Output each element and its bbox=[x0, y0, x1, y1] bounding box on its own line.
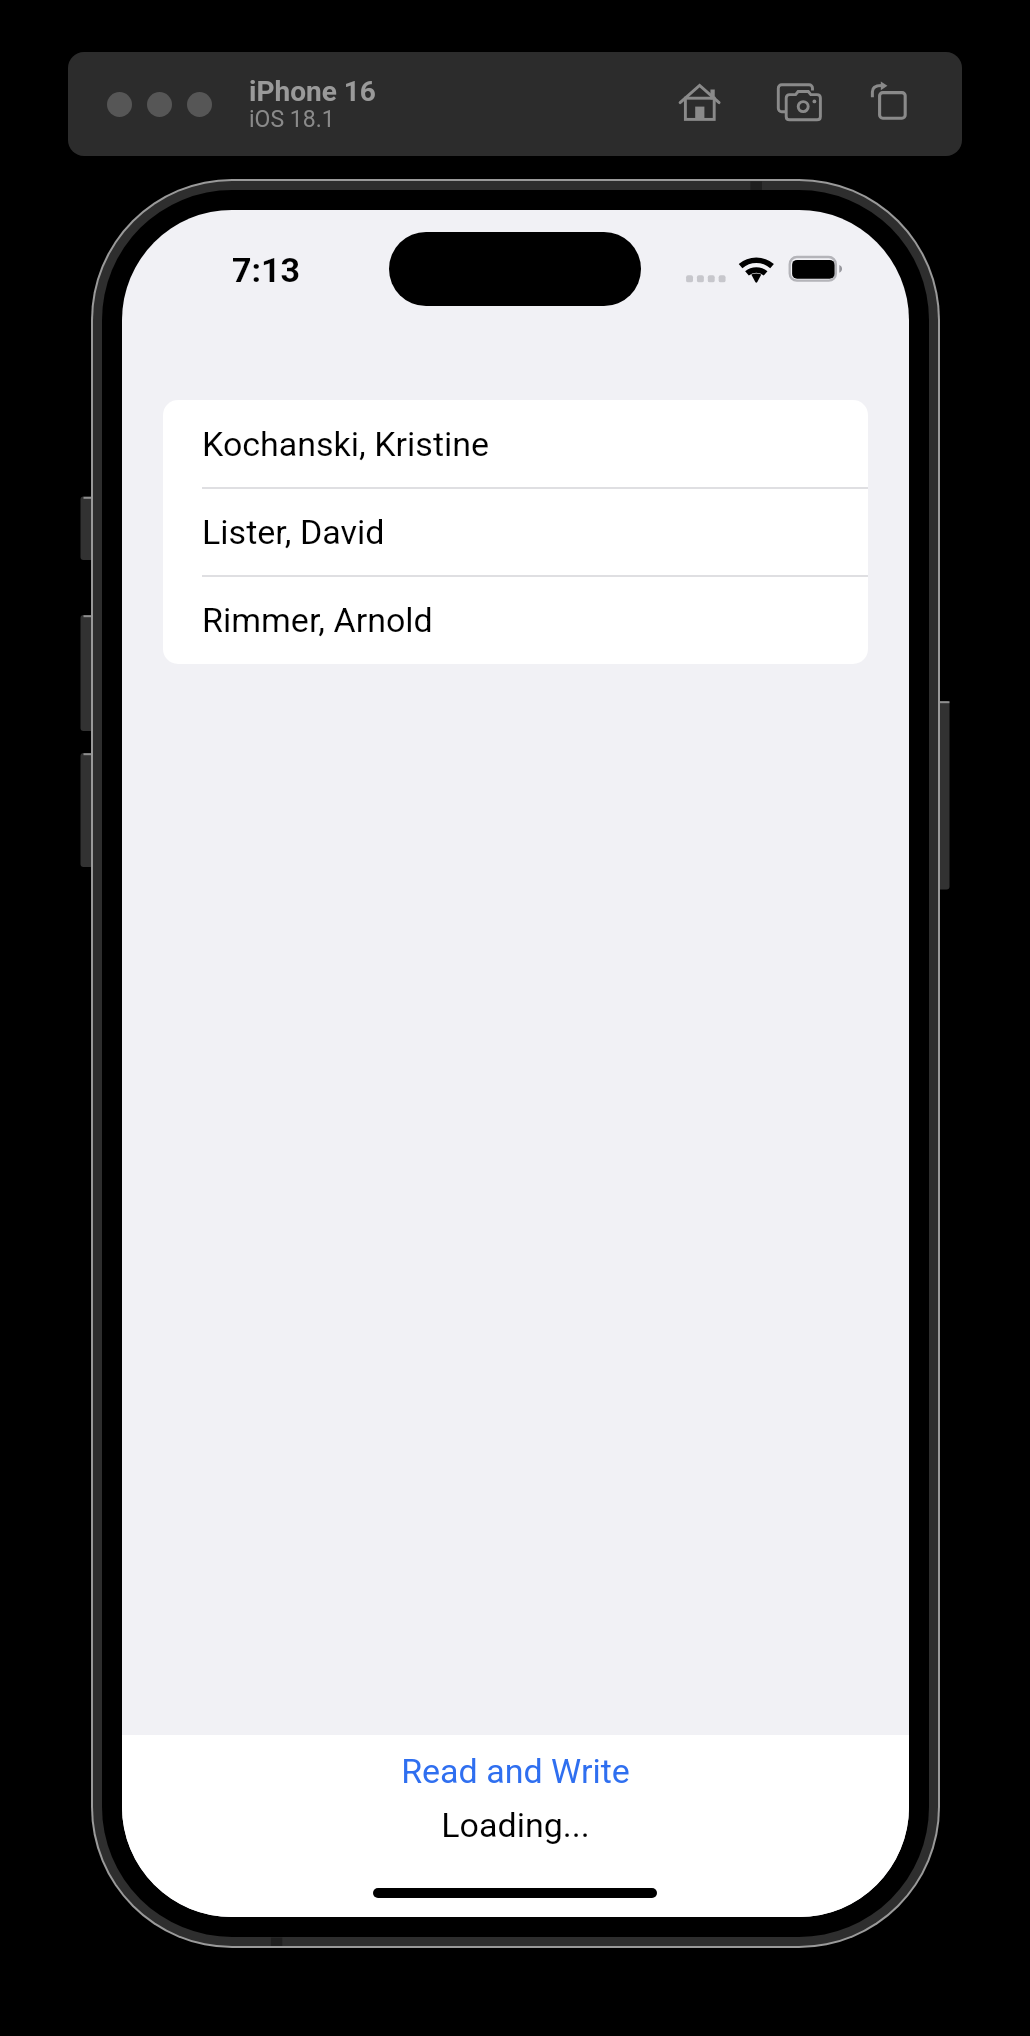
staticText: 7:13 bbox=[232, 250, 301, 290]
button[interactable]: Lister, David bbox=[163, 488, 868, 576]
staticText: iPhone 16 bbox=[249, 75, 376, 108]
staticText: iOS 18.1 bbox=[249, 106, 335, 133]
button[interactable]: Close window bbox=[107, 92, 132, 117]
button[interactable]: Home bbox=[673, 80, 721, 128]
staticText: Kochanski, Kristine bbox=[202, 424, 490, 464]
button[interactable]: Screenshot bbox=[770, 80, 818, 128]
button[interactable]: Read and Write bbox=[122, 1747, 909, 1795]
button[interactable]: Record screen bbox=[864, 80, 912, 128]
button[interactable]: Rimmer, Arnold bbox=[163, 576, 868, 664]
staticText: Lister, David bbox=[202, 512, 385, 552]
button[interactable]: Minimise window bbox=[147, 92, 172, 117]
staticText: Read and Write bbox=[401, 1751, 630, 1791]
staticText: Loading... bbox=[441, 1805, 590, 1845]
button[interactable]: Kochanski, Kristine bbox=[163, 400, 868, 488]
staticText: Rimmer, Arnold bbox=[202, 600, 433, 640]
button[interactable]: Zoom window bbox=[187, 92, 212, 117]
